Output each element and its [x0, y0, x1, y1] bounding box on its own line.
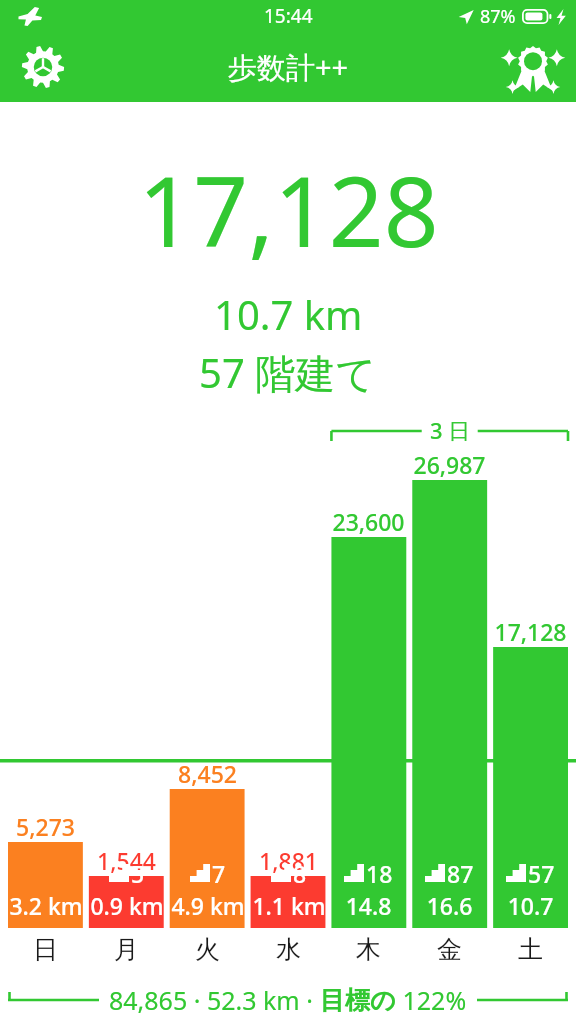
staticText: 15:44: [264, 3, 313, 29]
button[interactable]: 84,865 · 52.3 km ·: [0, 976, 576, 1024]
staticText: 87%: [480, 4, 516, 29]
staticText: 84,865 · 52.3 km ·: [109, 983, 320, 1017]
staticText: 122%: [396, 983, 467, 1017]
staticText: 23,600: [332, 506, 405, 537]
button[interactable]: Settings: [12, 36, 74, 98]
staticText: 木: [356, 934, 381, 965]
staticText: 歩数計++: [228, 47, 349, 87]
staticText: 目標の: [320, 985, 396, 1016]
staticText: 1,544: [97, 845, 156, 876]
staticText: 57 階建て: [199, 345, 377, 400]
staticText: 16.6 km: [412, 890, 487, 928]
staticText: 10.7 km: [214, 287, 363, 341]
staticText: 月: [114, 934, 139, 965]
staticText: 8: [293, 858, 307, 889]
button[interactable]: Achievements: [500, 34, 566, 100]
staticText: 18: [366, 858, 393, 889]
staticText: 17,128: [494, 616, 567, 647]
staticText: 5: [131, 858, 145, 889]
staticText: 土: [518, 934, 543, 965]
staticText: 4.9 km: [171, 890, 245, 921]
staticText: 17,128: [138, 144, 439, 275]
staticText: 10.7 km: [493, 890, 568, 928]
staticText: 日: [33, 934, 58, 965]
staticText: 1,881: [259, 845, 318, 876]
staticText: 火: [195, 934, 220, 965]
staticText: 14.8 km: [331, 890, 406, 928]
staticText: 3.2 km: [9, 890, 83, 921]
staticText: 8,452: [178, 758, 237, 789]
staticText: 7: [212, 858, 226, 889]
staticText: 26,987: [413, 449, 486, 480]
staticText: 0.9 km: [90, 890, 164, 921]
staticText: 金: [437, 934, 462, 965]
staticText: 水: [276, 934, 301, 965]
staticText: 1.1 km: [252, 890, 326, 921]
staticText: 5,273: [16, 811, 75, 842]
staticText: 57: [528, 858, 555, 889]
staticText: 87: [447, 858, 474, 889]
staticText: 3 日: [430, 415, 471, 445]
